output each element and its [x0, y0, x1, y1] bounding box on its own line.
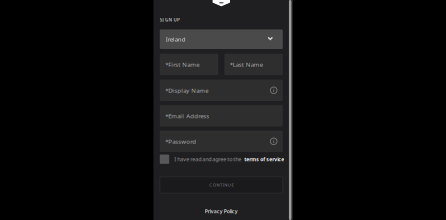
button[interactable]: *Last Name: [224, 54, 283, 75]
button[interactable]: Ireland: [160, 29, 283, 49]
button[interactable]: *Password: [160, 131, 283, 152]
staticText: *Display Name: [165, 86, 208, 94]
staticText: SIGN UP: [160, 17, 180, 23]
button[interactable]: CONTINUE: [160, 177, 283, 193]
staticText: Ireland: [166, 35, 186, 43]
button[interactable]: *Display Name: [160, 80, 283, 101]
staticText: Privacy Policy: [205, 208, 238, 215]
button[interactable]: *First Name: [160, 54, 218, 75]
staticText: terms of service: [244, 156, 284, 163]
staticText: *First Name: [165, 60, 199, 68]
staticText: *Password: [165, 137, 196, 145]
button[interactable]: I have read and agree to the: [160, 154, 289, 164]
staticText: *Email Address: [165, 112, 209, 120]
staticText: *Last Name: [230, 60, 263, 68]
staticText: CONTINUE: [209, 182, 233, 188]
button[interactable]: *Email Address: [160, 105, 283, 126]
staticText: I have read and agree to the: [174, 155, 241, 163]
button[interactable]: Privacy Policy: [191, 206, 251, 216]
